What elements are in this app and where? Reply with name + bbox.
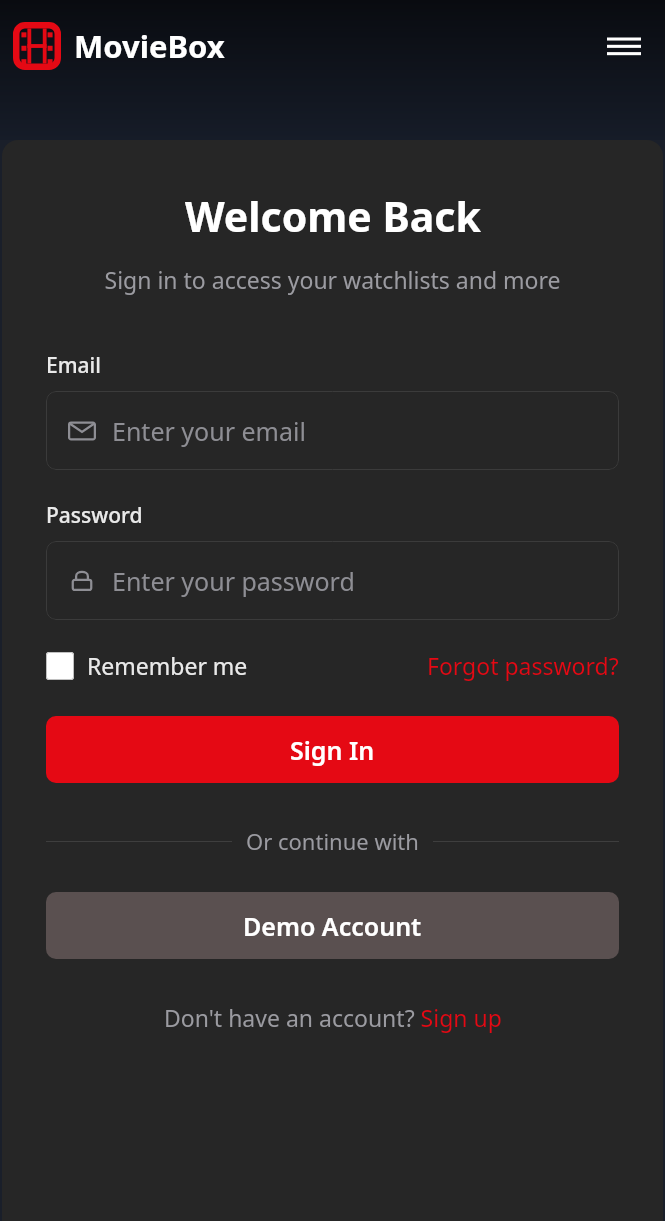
staticText: Don't have an account? Sign up (164, 1002, 502, 1033)
staticText: Or continue with (246, 826, 419, 856)
button[interactable]: Demo Account (46, 892, 619, 959)
button[interactable]: MovieBox logo (10, 19, 64, 73)
staticText: Forgot password? (427, 650, 619, 681)
staticText: Email (46, 351, 101, 380)
button[interactable]: Menu (601, 23, 647, 69)
button[interactable]: Don't have an account? Sign up (46, 1002, 619, 1033)
button[interactable]: Forgot password? (427, 650, 619, 681)
staticText: Welcome Back (185, 188, 481, 244)
staticText: Enter your email (112, 414, 306, 448)
staticText: Sign In (290, 733, 375, 767)
button[interactable]: Enter your password (46, 541, 619, 620)
staticText: Sign in to access your watchlists and mo… (46, 264, 619, 295)
staticText: MovieBox (74, 25, 225, 67)
staticText: Password (46, 501, 143, 530)
button[interactable]: Remember me (46, 650, 248, 681)
staticText: Remember me (87, 650, 248, 681)
button[interactable]: Enter your email (46, 391, 619, 470)
button[interactable]: Sign In (46, 716, 619, 783)
staticText: Enter your password (112, 564, 355, 598)
staticText: Demo Account (243, 909, 422, 943)
